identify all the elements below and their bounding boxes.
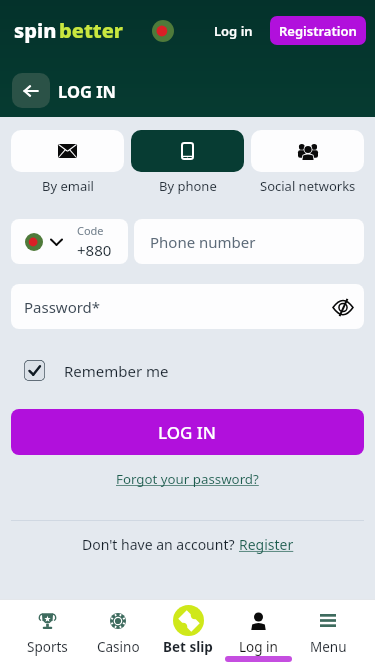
button[interactable]: Password* xyxy=(11,284,364,329)
staticText: better xyxy=(59,17,123,44)
button[interactable]: Registration xyxy=(270,16,366,45)
button[interactable]: Show password xyxy=(331,295,355,319)
staticText: Forgot your password? xyxy=(116,470,259,488)
staticText: LOG IN xyxy=(158,421,217,444)
staticText: Don't have an account? xyxy=(82,535,239,554)
button[interactable]: Code xyxy=(11,219,128,264)
button[interactable]: Bet slip xyxy=(153,600,223,666)
staticText: Password* xyxy=(24,297,101,317)
button[interactable]: Back xyxy=(12,73,50,108)
button[interactable]: Log in xyxy=(206,16,261,46)
button[interactable]: LOG IN xyxy=(11,409,364,455)
staticText: Log in xyxy=(214,22,253,40)
staticText: Phone number xyxy=(150,232,256,252)
button[interactable]: Forgot your password? xyxy=(116,470,259,488)
staticText: Bet slip xyxy=(163,638,213,656)
staticText: Social networks xyxy=(260,177,356,195)
staticText: spin xyxy=(14,17,57,44)
button[interactable]: Casino xyxy=(83,600,153,666)
staticText: LOG IN xyxy=(58,80,117,102)
staticText: Register xyxy=(239,535,294,554)
button[interactable]: Phone number xyxy=(134,219,364,264)
staticText: Registration xyxy=(279,22,357,40)
button[interactable] xyxy=(131,130,244,172)
button[interactable]: Menu xyxy=(293,600,363,666)
staticText: Menu xyxy=(310,638,347,656)
button[interactable]: Remember me xyxy=(24,360,169,381)
button[interactable]: Register xyxy=(239,535,294,554)
staticText: Log in xyxy=(239,638,278,656)
button[interactable]: Sports xyxy=(12,600,83,666)
staticText: +880 xyxy=(77,240,112,260)
staticText: Sports xyxy=(27,638,68,656)
staticText: Casino xyxy=(97,638,140,656)
button[interactable] xyxy=(11,130,124,172)
staticText: Code xyxy=(77,223,104,238)
staticText: By email xyxy=(42,177,94,195)
button[interactable]: Log in xyxy=(223,600,293,666)
staticText: By phone xyxy=(159,177,217,195)
staticText: Remember me xyxy=(64,361,169,381)
button[interactable] xyxy=(251,130,364,172)
